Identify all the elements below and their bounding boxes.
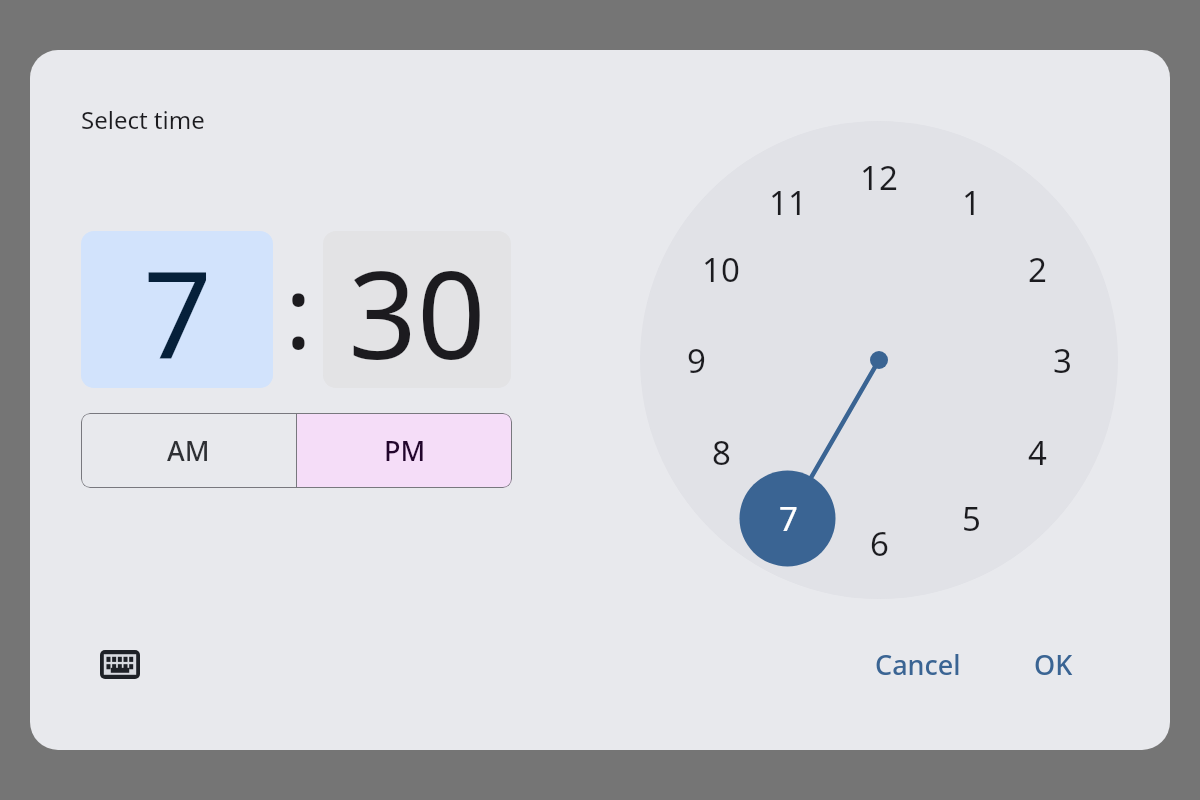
staticText: Cancel [875,646,961,683]
staticText: PM [384,432,426,469]
staticText: 9 [687,338,706,383]
staticText: 7 [779,496,798,541]
button[interactable]: 12 [843,148,915,206]
button[interactable]: AM [81,413,296,488]
button[interactable]: 2 [1001,240,1073,298]
staticText: 30 [348,231,486,388]
button[interactable]: 1 [935,173,1007,231]
button[interactable]: 3 [1026,331,1098,389]
button[interactable]: OK [1022,632,1085,696]
staticText: Select time [81,103,205,136]
staticText: 8 [712,430,731,475]
button[interactable]: 10 [685,240,757,298]
staticText: 6 [870,521,889,566]
button[interactable]: 30 [323,231,511,388]
staticText: 10 [702,247,740,292]
button[interactable]: 4 [1001,423,1073,481]
staticText: : [285,242,312,378]
button[interactable]: 8 [685,423,757,481]
button[interactable]: 7 [81,231,273,388]
staticText: OK [1034,646,1073,683]
button[interactable]: 9 [660,331,732,389]
staticText: AM [167,432,210,469]
staticText: 11 [769,180,807,225]
staticText: 1 [962,180,981,225]
staticText: 5 [962,496,981,541]
button[interactable]: Cancel [863,632,973,696]
button[interactable]: PM [297,413,512,488]
button[interactable]: 6 [843,514,915,572]
button[interactable]: 7 [752,489,824,547]
button[interactable]: 5 [935,489,1007,547]
staticText: 12 [860,155,898,200]
button[interactable]: Switch to text input [88,632,152,696]
staticText: 7 [143,231,212,388]
staticText: 3 [1053,338,1072,383]
staticText: 2 [1028,247,1047,292]
staticText: 4 [1028,430,1047,475]
button[interactable]: 11 [752,173,824,231]
